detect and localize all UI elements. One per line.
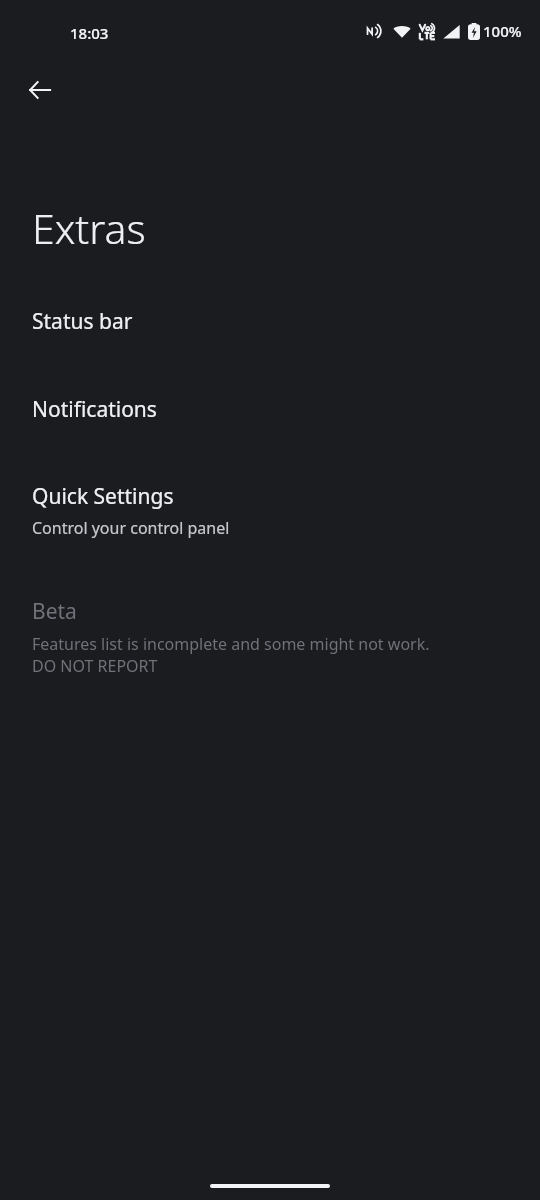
staticText: Features list is incomplete and some mig…: [32, 633, 430, 677]
staticText: Beta: [32, 597, 77, 626]
button[interactable]: Quick Settings: [0, 482, 540, 539]
staticText: Quick Settings: [32, 482, 174, 511]
button[interactable]: Status bar: [0, 307, 540, 336]
staticText: Status bar: [32, 307, 133, 336]
button[interactable]: Notifications: [0, 395, 540, 424]
button[interactable]: Back: [12, 62, 68, 118]
staticText: Extras: [32, 200, 146, 256]
staticText: 100%: [483, 21, 522, 41]
staticText: Control your control panel: [32, 517, 230, 539]
button[interactable]: Beta: [0, 597, 540, 677]
staticText: 18:03: [70, 23, 109, 43]
staticText: Notifications: [32, 395, 157, 424]
